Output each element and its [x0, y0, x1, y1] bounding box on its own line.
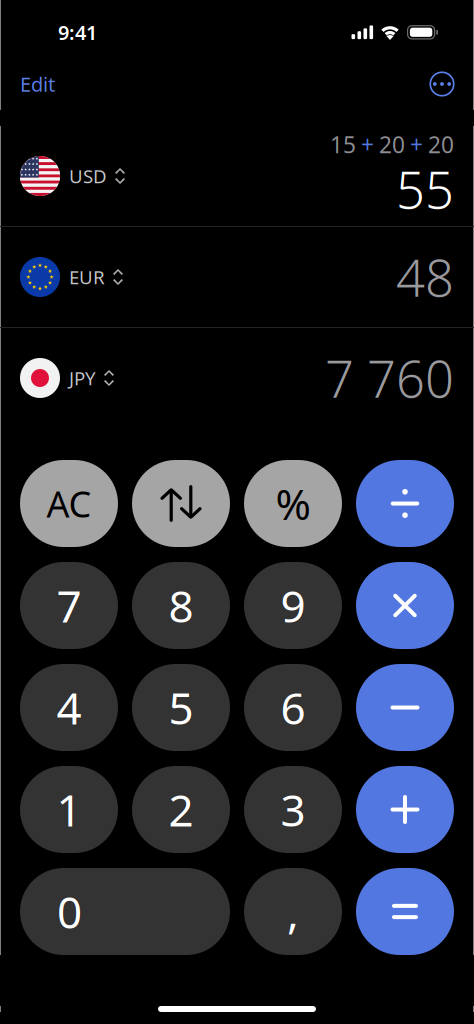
button[interactable]: 3 — [244, 766, 342, 853]
staticText: 9 — [280, 576, 305, 635]
staticText: 5 — [168, 678, 193, 737]
button[interactable]: Add — [356, 766, 454, 853]
button[interactable]: 0 — [20, 868, 230, 955]
button[interactable]: JPY — [0, 328, 474, 428]
button[interactable]: EUR — [0, 227, 474, 327]
button[interactable]: 9 — [244, 562, 342, 649]
button[interactable]: 5 — [132, 664, 230, 751]
button[interactable]: 7 — [20, 562, 118, 649]
staticText: + — [361, 129, 374, 159]
staticText: 1 — [56, 780, 81, 839]
staticText: AC — [46, 480, 91, 527]
staticText: EUR — [69, 265, 105, 289]
staticText: 4 — [56, 678, 81, 737]
staticText: + — [410, 129, 423, 159]
staticText: 20 — [379, 129, 405, 159]
button[interactable]: Divide — [356, 460, 454, 547]
staticText: 8 — [168, 576, 193, 635]
staticText: USD — [69, 164, 107, 188]
staticText: 48 — [396, 243, 454, 311]
staticText: 55 — [396, 155, 454, 223]
staticText: 9:41 — [58, 19, 97, 46]
staticText: Edit — [20, 71, 55, 97]
button[interactable]: 1 — [20, 766, 118, 853]
button[interactable]: Edit — [20, 62, 76, 106]
button[interactable]: 6 — [244, 664, 342, 751]
staticText: , — [287, 882, 299, 941]
button[interactable]: , — [244, 868, 342, 955]
button[interactable]: % — [244, 460, 342, 547]
staticText: 3 — [280, 780, 305, 839]
button[interactable]: Swap currencies — [132, 460, 230, 547]
staticText: 7 — [56, 576, 81, 635]
button[interactable]: USD — [0, 126, 474, 226]
button[interactable]: Equals — [356, 868, 454, 955]
button[interactable]: Multiply — [356, 562, 454, 649]
staticText: 6 — [280, 678, 305, 737]
staticText: 7 760 — [325, 344, 454, 412]
staticText: 0 — [57, 882, 82, 941]
button[interactable]: 8 — [132, 562, 230, 649]
button[interactable]: 4 — [20, 664, 118, 751]
button[interactable]: 2 — [132, 766, 230, 853]
staticText: 20 — [428, 129, 454, 159]
staticText: % — [275, 475, 310, 532]
button[interactable]: Subtract — [356, 664, 454, 751]
button[interactable]: AC — [20, 460, 118, 547]
staticText: JPY — [69, 366, 96, 390]
button[interactable]: More options — [420, 62, 464, 106]
staticText: 15 — [330, 129, 356, 159]
staticText: 2 — [168, 780, 193, 839]
